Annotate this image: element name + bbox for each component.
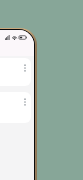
button[interactable]: More options	[22, 97, 28, 107]
button[interactable]: More options	[0, 58, 31, 86]
button[interactable]: More options	[0, 92, 31, 123]
button[interactable]: More options	[22, 63, 28, 73]
